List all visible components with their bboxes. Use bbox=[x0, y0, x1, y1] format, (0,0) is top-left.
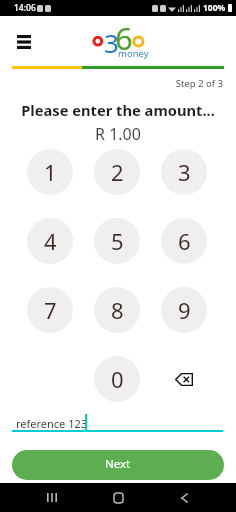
button[interactable]: 8 bbox=[94, 287, 140, 333]
button[interactable]: Recents bbox=[37, 483, 67, 512]
staticText: 5 bbox=[111, 226, 124, 256]
button[interactable]: 9 bbox=[161, 287, 207, 333]
staticText: 9 bbox=[178, 295, 191, 325]
staticText: Please enter the amount... bbox=[0, 100, 236, 120]
staticText: Next bbox=[105, 456, 131, 472]
staticText: Step 2 of 3 bbox=[0, 77, 223, 90]
staticText: 2 bbox=[111, 157, 124, 187]
staticText: 3 bbox=[104, 25, 119, 60]
staticText: 100% bbox=[203, 2, 226, 14]
staticText: 3 bbox=[178, 157, 191, 187]
staticText: reference 123 bbox=[16, 416, 88, 431]
button[interactable]: reference 123 bbox=[12, 404, 224, 431]
button[interactable]: 0 bbox=[94, 356, 140, 402]
button[interactable]: 4 bbox=[27, 218, 73, 264]
button[interactable]: Home bbox=[103, 483, 133, 512]
button[interactable]: 1 bbox=[27, 149, 73, 195]
button[interactable]: 3 bbox=[161, 149, 207, 195]
button[interactable]: Menu bbox=[11, 29, 37, 55]
button[interactable]: Backspace bbox=[161, 356, 207, 402]
staticText: 4 bbox=[44, 226, 57, 256]
staticText: 0 bbox=[111, 364, 124, 394]
staticText: 8 bbox=[111, 295, 124, 325]
staticText: R 1.00 bbox=[0, 123, 236, 145]
staticText: 14:06 bbox=[14, 2, 36, 14]
button[interactable]: Next bbox=[12, 450, 224, 480]
staticText: money bbox=[118, 47, 149, 60]
button[interactable]: 6 bbox=[161, 218, 207, 264]
staticText: 1 bbox=[44, 157, 57, 187]
staticText: 7 bbox=[44, 295, 57, 325]
staticText: 6 bbox=[115, 17, 133, 59]
button[interactable]: 2 bbox=[94, 149, 140, 195]
button[interactable]: Back bbox=[169, 483, 199, 512]
staticText: 6 bbox=[178, 226, 191, 256]
button[interactable]: 7 bbox=[27, 287, 73, 333]
button[interactable]: 5 bbox=[94, 218, 140, 264]
